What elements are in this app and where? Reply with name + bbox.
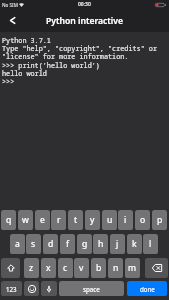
staticText: j [116, 238, 119, 250]
button[interactable]: o [135, 210, 150, 230]
staticText: g [82, 238, 88, 250]
staticText: f [66, 238, 69, 250]
staticText: r [57, 214, 61, 226]
button[interactable]: Back [2, 10, 22, 30]
staticText: v [79, 262, 84, 274]
button[interactable]: r [51, 210, 66, 230]
button[interactable]: m [125, 258, 140, 278]
button[interactable]: v [74, 258, 89, 278]
staticText: No SIM [2, 2, 18, 8]
staticText: hello world [2, 69, 47, 78]
button[interactable]: j [110, 234, 125, 254]
staticText: Python 3.7.1 [2, 36, 51, 45]
staticText: 123 [6, 285, 17, 293]
staticText: u [107, 214, 113, 226]
staticText: e [40, 214, 45, 226]
staticText: space [83, 285, 100, 293]
button[interactable]: p [152, 210, 167, 230]
staticText: done [140, 285, 155, 293]
staticText: >>> print('hello world') [2, 61, 100, 70]
button[interactable]: u [102, 210, 117, 230]
staticText: z [29, 262, 34, 274]
button[interactable]: w [18, 210, 33, 230]
staticText: w [22, 214, 29, 226]
staticText: Python interactive [46, 15, 123, 27]
button[interactable]: f [60, 234, 75, 254]
button[interactable]: l [143, 234, 158, 254]
button[interactable]: x [41, 258, 56, 278]
staticText: y [90, 214, 95, 226]
button[interactable]: k [127, 234, 142, 254]
staticText: "license" for more information. [2, 52, 129, 61]
button[interactable]: z [24, 258, 39, 278]
button[interactable]: c [58, 258, 73, 278]
button[interactable]: d [43, 234, 58, 254]
button[interactable]: n [108, 258, 123, 278]
staticText: d [48, 238, 54, 250]
staticText: a [15, 238, 20, 250]
button[interactable]: Shift [1, 258, 20, 278]
button[interactable]: i [118, 210, 133, 230]
staticText: m [128, 262, 137, 274]
staticText: 00:30 [78, 1, 91, 8]
staticText: l [149, 238, 152, 250]
button[interactable]: done [127, 281, 167, 296]
button[interactable]: b [91, 258, 106, 278]
staticText: c [63, 262, 68, 274]
button[interactable]: e [35, 210, 50, 230]
staticText: h [98, 238, 104, 250]
staticText: >>> [2, 77, 15, 86]
button[interactable]: Backspace [145, 258, 168, 278]
staticText: x [46, 262, 51, 274]
staticText: s [31, 238, 36, 250]
staticText: p [157, 214, 163, 226]
staticText: o [140, 214, 146, 226]
staticText: t [74, 214, 78, 226]
button[interactable]: t [68, 210, 83, 230]
button[interactable]: h [93, 234, 108, 254]
staticText: Type "help", "copyright", "credits" or [2, 44, 157, 53]
button[interactable]: a [10, 234, 25, 254]
button[interactable]: g [77, 234, 92, 254]
button[interactable]: 123 [1, 281, 22, 296]
button[interactable]: s [26, 234, 41, 254]
staticText: q [6, 214, 12, 226]
staticText: i [124, 214, 127, 226]
button[interactable]: space [59, 281, 124, 296]
staticText: n [113, 262, 119, 274]
button[interactable]: y [85, 210, 100, 230]
button[interactable]: q [1, 210, 16, 230]
button[interactable]: Voice input [41, 281, 57, 296]
staticText: k [132, 238, 137, 250]
button[interactable]: Emoji [24, 281, 39, 296]
staticText: b [96, 262, 102, 274]
